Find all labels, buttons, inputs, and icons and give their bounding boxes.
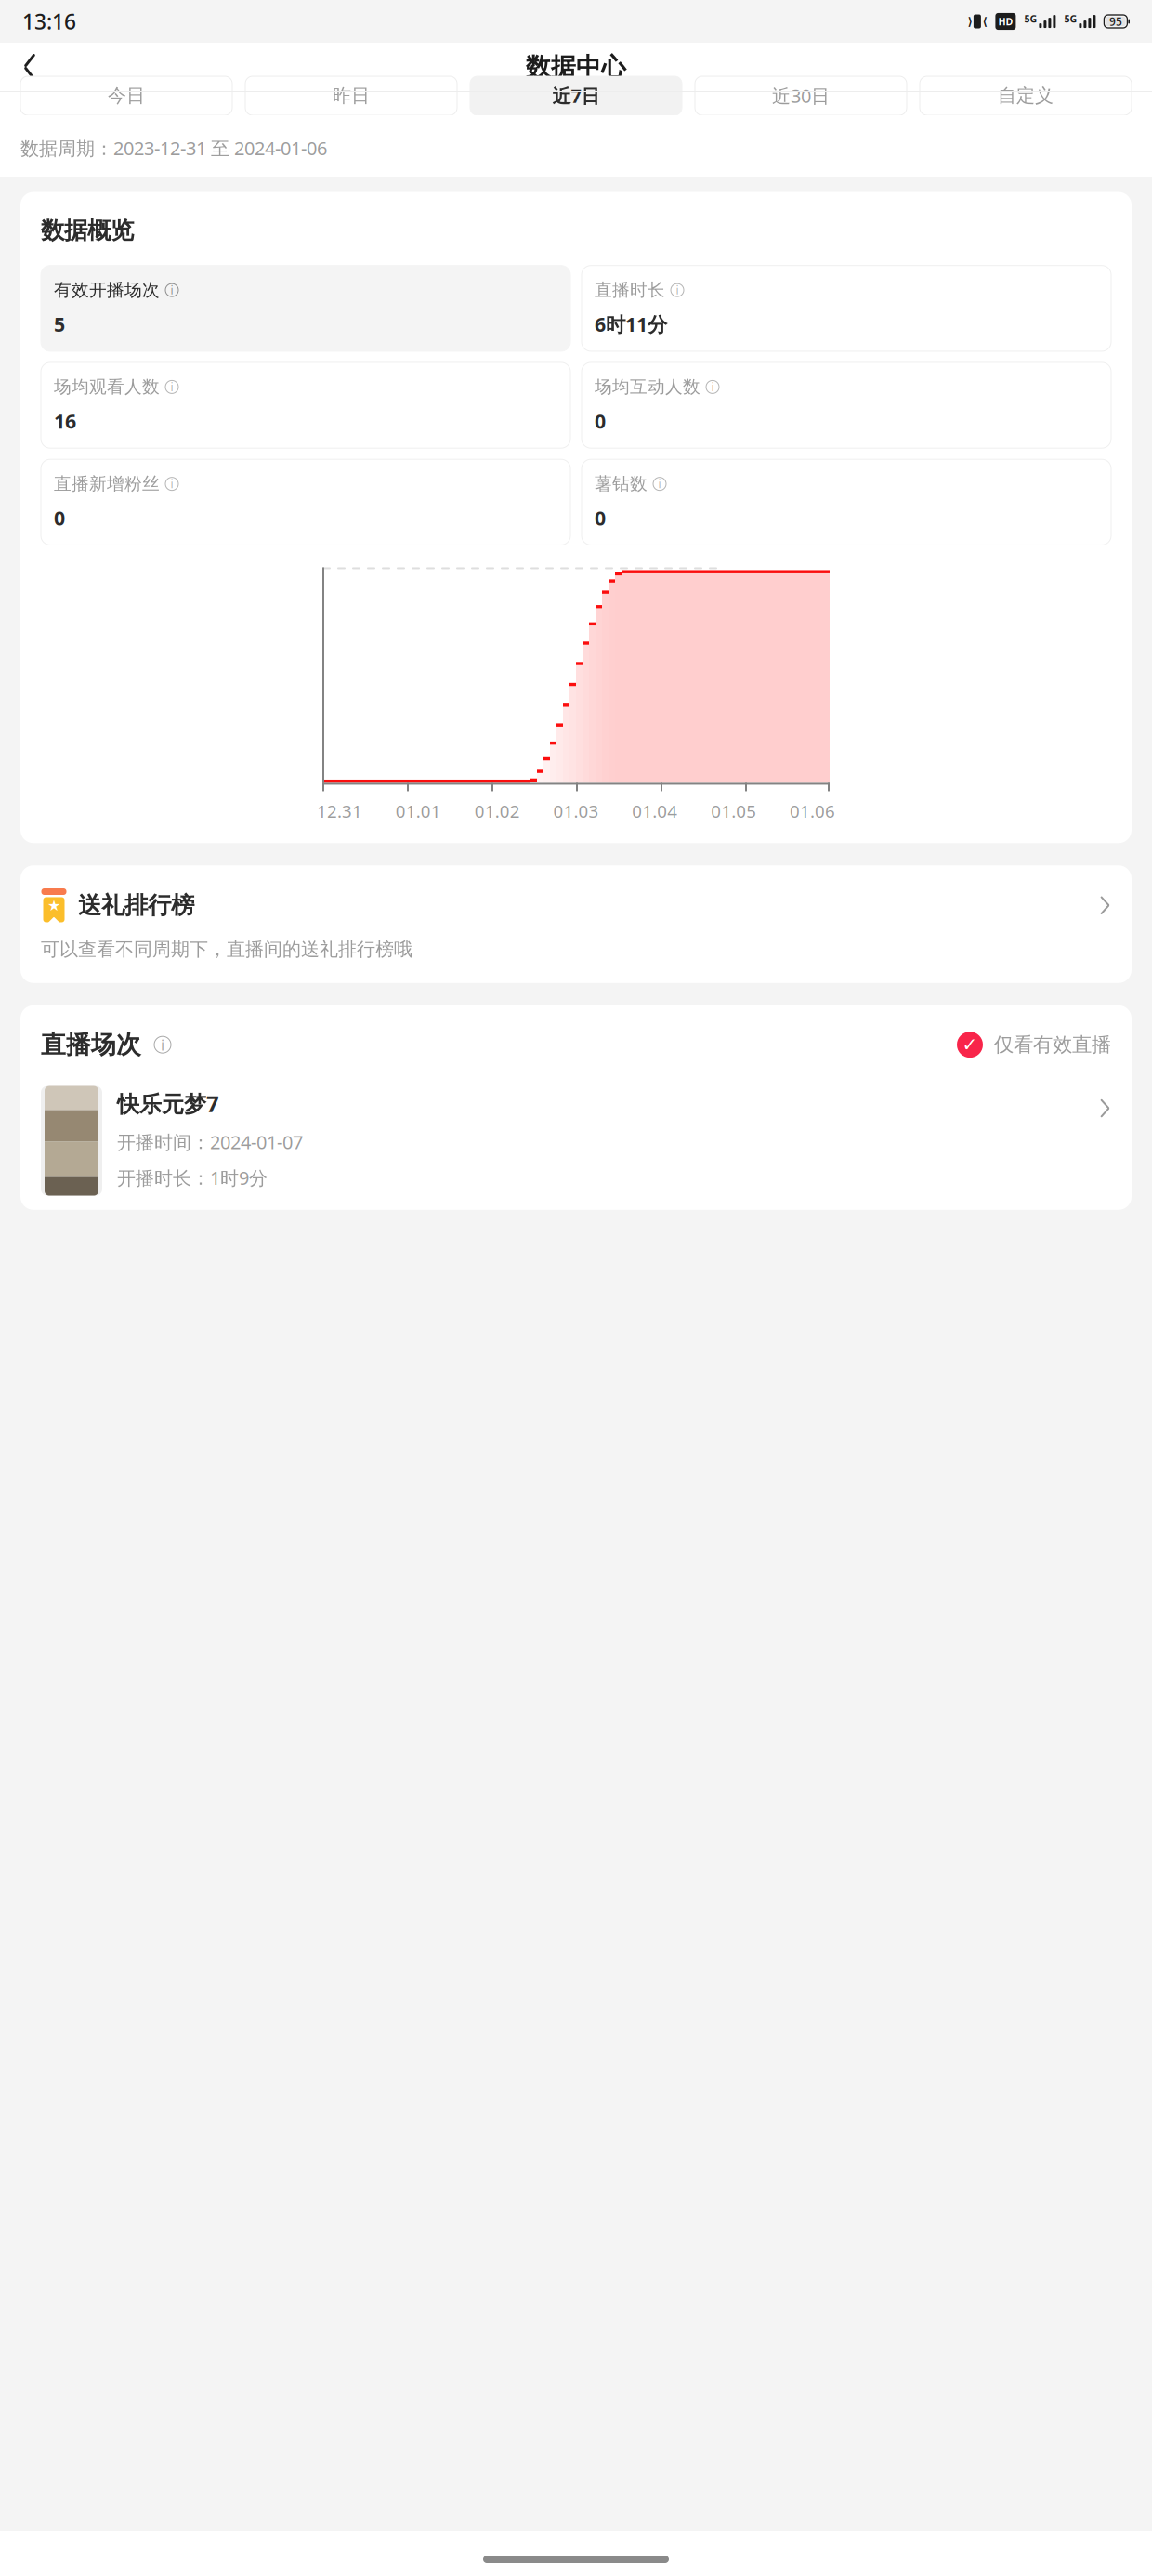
staticText: 数据周期：2023-12-31 至 2024-01-06 (20, 136, 327, 160)
staticText: ✓ (962, 1034, 978, 1055)
staticText: 薯钻数 (595, 473, 648, 494)
staticText: 场均观看人数 (54, 376, 160, 398)
button[interactable]: ✓ (957, 1032, 1111, 1058)
staticText: 13:16 (22, 7, 76, 35)
button[interactable]: 快乐元梦7 (41, 1086, 1111, 1196)
staticText: 01.06 (790, 800, 835, 823)
staticText: 送礼排行榜 (78, 891, 194, 920)
staticText: 0 (595, 505, 606, 531)
staticText: 快乐元梦7 (117, 1089, 219, 1118)
staticText: 直播时长 (595, 279, 665, 301)
staticText: i (170, 283, 173, 297)
staticText: 5G (1024, 12, 1037, 25)
staticText: i (711, 380, 714, 394)
staticText: HD (998, 15, 1013, 28)
button[interactable]: 薯钻数 (582, 459, 1111, 545)
staticText: 场均互动人数 (595, 376, 700, 398)
staticText: 数据概览 (41, 216, 134, 245)
staticText: 自定义 (998, 84, 1054, 107)
staticText: i (161, 1035, 164, 1055)
staticText: 01.01 (396, 800, 441, 823)
staticText: 5 (54, 311, 65, 337)
staticText: ★ (47, 897, 60, 914)
staticText: 12.31 (317, 800, 362, 823)
button[interactable]: 场均观看人数 (41, 362, 570, 448)
staticText: 可以查看不同周期下，直播间的送礼排行榜哦 (41, 938, 412, 961)
staticText: 01.04 (632, 800, 678, 823)
button[interactable]: 自定义 (920, 76, 1132, 115)
staticText: ⟨ (982, 15, 987, 28)
button[interactable]: 有效开播场次 (41, 265, 570, 351)
staticText: 0 (595, 408, 606, 434)
button[interactable]: 昨日 (245, 76, 457, 115)
staticText: 昨日 (333, 84, 370, 107)
staticText: ⟩ (967, 15, 972, 28)
staticText: 直播场次 (41, 1029, 141, 1060)
button[interactable]: 返回 (9, 46, 50, 87)
button[interactable]: 直播时长 (582, 265, 1111, 351)
staticText: i (170, 380, 173, 394)
staticText: 数据中心 (526, 52, 626, 82)
staticText: 仅看有效直播 (994, 1033, 1111, 1057)
staticText: 16 (54, 408, 76, 434)
staticText: 开播时长：1时9分 (117, 1165, 268, 1190)
staticText: 01.03 (553, 800, 599, 823)
button[interactable]: 近7日 (470, 76, 682, 115)
button[interactable]: ★ (20, 865, 1132, 983)
staticText: 近7日 (552, 83, 600, 108)
staticText: i (170, 476, 173, 491)
staticText: i (658, 476, 661, 491)
staticText: 5G (1064, 12, 1077, 25)
staticText: 01.05 (711, 800, 756, 823)
staticText: 直播新增粉丝 (54, 473, 160, 494)
button[interactable]: 场均互动人数 (582, 362, 1111, 448)
staticText: 6时11分 (595, 311, 667, 337)
button[interactable]: 直播新增粉丝 (41, 459, 570, 545)
button[interactable]: 近30日 (695, 76, 907, 115)
staticText: 今日 (108, 84, 145, 107)
staticText: 近30日 (772, 83, 830, 108)
staticText: 0 (54, 505, 65, 531)
staticText: 95 (1109, 14, 1122, 29)
staticText: i (676, 283, 679, 297)
staticText: 有效开播场次 (54, 279, 160, 301)
staticText: 01.02 (474, 800, 520, 823)
staticText: 开播时间：2024-01-07 (117, 1129, 303, 1154)
button[interactable]: 今日 (20, 76, 232, 115)
